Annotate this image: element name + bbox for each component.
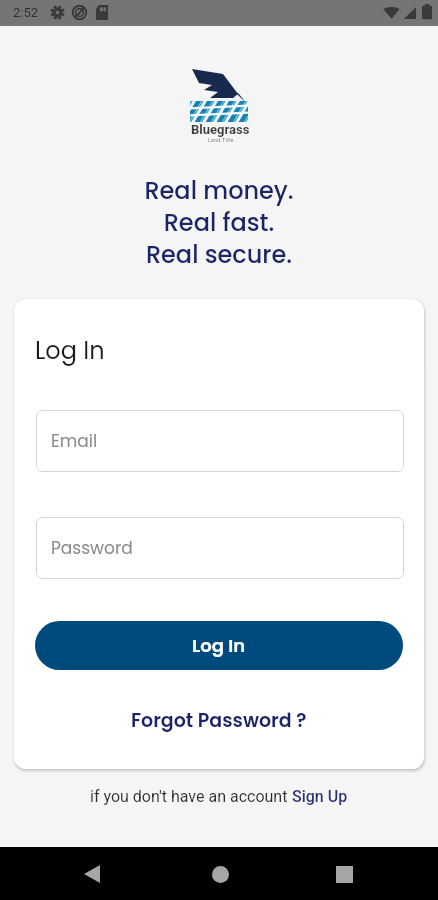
button[interactable]: Log In <box>35 621 403 670</box>
staticText: Land Title <box>208 137 234 143</box>
button[interactable]: Password <box>36 517 404 579</box>
staticText: 2:52 <box>13 5 39 20</box>
staticText: Email <box>51 429 98 453</box>
button[interactable]: Forgot Password ? <box>131 707 307 734</box>
button[interactable]: Recents <box>320 852 368 896</box>
staticText: if you don't have an account <box>90 787 292 806</box>
button[interactable]: Back <box>68 852 116 896</box>
button[interactable]: Sign Up <box>292 787 348 806</box>
button[interactable]: Email <box>36 410 404 472</box>
staticText: Log In <box>192 633 246 658</box>
staticText: Forgot Password ? <box>131 707 307 734</box>
staticText: Real money. Real fast. Real secure. <box>0 174 438 272</box>
staticText: Password <box>51 536 133 560</box>
button[interactable]: Home <box>196 852 244 896</box>
staticText: Sign Up <box>292 787 348 806</box>
staticText: Log In <box>35 334 105 368</box>
staticText: Bluegrass <box>191 122 250 137</box>
